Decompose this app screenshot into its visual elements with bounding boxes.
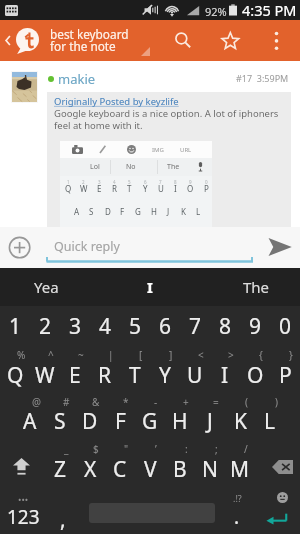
button[interactable]: Add attachment xyxy=(5,233,34,262)
button[interactable]: Avatar xyxy=(11,71,38,103)
button[interactable]: Favorite xyxy=(213,20,247,61)
staticText: = xyxy=(213,395,219,409)
staticText: 0 xyxy=(279,312,292,341)
button[interactable]: 2 xyxy=(30,306,60,352)
button[interactable]: H xyxy=(165,398,195,444)
staticText: I xyxy=(174,183,177,194)
button[interactable]: The xyxy=(223,268,289,306)
staticText: 5 xyxy=(129,312,142,341)
button[interactable]: Y xyxy=(150,352,180,398)
button[interactable]: 1 xyxy=(0,306,30,352)
button[interactable]: 3 xyxy=(60,306,90,352)
button[interactable]: Shift xyxy=(0,444,42,490)
staticText: Yea xyxy=(34,277,59,297)
button[interactable]: 6 xyxy=(150,306,180,352)
staticText: Q xyxy=(65,183,72,194)
staticText: | xyxy=(108,348,114,362)
staticText: - xyxy=(154,395,158,409)
staticText: > xyxy=(228,348,234,362)
staticText: X xyxy=(84,455,97,484)
staticText: 6 xyxy=(159,312,172,341)
button[interactable]: O xyxy=(240,352,270,398)
button[interactable]: L xyxy=(255,398,285,444)
button[interactable]: Yea xyxy=(13,268,79,306)
staticText: E xyxy=(97,183,102,194)
button[interactable]: S xyxy=(45,398,75,444)
staticText: Google keyboard is a nice option. A lot … xyxy=(54,107,279,132)
staticText: Y xyxy=(159,361,171,390)
button[interactable]: A xyxy=(15,398,45,444)
button[interactable]: makie xyxy=(58,70,96,88)
button[interactable]: Search xyxy=(164,20,198,61)
button[interactable]: T xyxy=(120,352,150,398)
button[interactable]: Z xyxy=(45,444,75,490)
staticText: K xyxy=(234,407,247,436)
staticText: . xyxy=(234,504,240,530)
staticText: 7 xyxy=(189,312,202,341)
staticText: R xyxy=(98,361,112,390)
staticText: ^ xyxy=(48,348,54,362)
button[interactable]: E xyxy=(60,352,90,398)
button[interactable]: W xyxy=(30,352,60,398)
button[interactable]: R xyxy=(90,352,120,398)
staticText: } xyxy=(289,348,293,362)
staticText: G xyxy=(142,407,158,436)
staticText: N xyxy=(202,455,218,484)
staticText: Y xyxy=(143,183,148,194)
staticText: O xyxy=(187,183,194,194)
staticText: ( xyxy=(245,395,248,409)
button[interactable]: K xyxy=(225,398,255,444)
button[interactable]: 5 xyxy=(120,306,150,352)
button[interactable]: 8 xyxy=(210,306,240,352)
button[interactable]: ••• xyxy=(0,490,46,534)
staticText: 4:35 PM xyxy=(242,0,297,20)
staticText: " xyxy=(124,442,129,456)
button[interactable]: C xyxy=(105,444,135,490)
button[interactable]: D xyxy=(75,398,105,444)
button[interactable]: I xyxy=(117,268,183,306)
button[interactable]: 0 xyxy=(270,306,300,352)
staticText: P xyxy=(279,361,292,390)
button[interactable]: Send xyxy=(266,235,294,259)
staticText: 2 xyxy=(39,312,52,341)
button[interactable]: Enter xyxy=(255,490,299,534)
button[interactable]: J xyxy=(195,398,225,444)
button[interactable]: .!? xyxy=(217,490,257,534)
button[interactable]: Backspace xyxy=(264,444,300,490)
staticText: The xyxy=(243,277,270,297)
staticText: _ xyxy=(64,442,69,456)
staticText: ; xyxy=(215,442,218,456)
button[interactable]: 4 xyxy=(90,306,120,352)
button[interactable]: 9 xyxy=(240,306,270,352)
button[interactable]: M xyxy=(225,444,255,490)
staticText: 9 xyxy=(249,312,262,341)
button[interactable]: Q xyxy=(0,352,30,398)
staticText: K xyxy=(181,206,186,217)
button[interactable]: I xyxy=(210,352,240,398)
staticText: 1 xyxy=(67,179,70,185)
staticText: : xyxy=(185,442,188,456)
button[interactable]: X xyxy=(75,444,105,490)
button[interactable]: 7 xyxy=(180,306,210,352)
staticText: Quick reply xyxy=(54,238,120,255)
button[interactable]: G xyxy=(135,398,165,444)
button[interactable]: U xyxy=(180,352,210,398)
button[interactable]: Back xyxy=(0,20,16,61)
button[interactable]: F xyxy=(105,398,135,444)
button[interactable]: B xyxy=(165,444,195,490)
button[interactable]: Quick reply xyxy=(46,231,253,265)
button[interactable]: More options xyxy=(259,20,293,61)
button[interactable]: , xyxy=(47,490,79,534)
button[interactable]: P xyxy=(270,352,300,398)
button[interactable]: Originally Posted by keyzlife xyxy=(54,95,179,108)
staticText: J xyxy=(167,206,170,217)
button[interactable]: Space xyxy=(89,490,215,534)
staticText: ’ xyxy=(155,442,157,456)
staticText: 1 xyxy=(9,312,22,341)
button[interactable]: V xyxy=(135,444,165,490)
staticText: & xyxy=(92,395,100,409)
staticText: 8 xyxy=(219,312,232,341)
staticText: H xyxy=(172,407,188,436)
staticText: 4 xyxy=(99,312,112,341)
button[interactable]: N xyxy=(195,444,225,490)
